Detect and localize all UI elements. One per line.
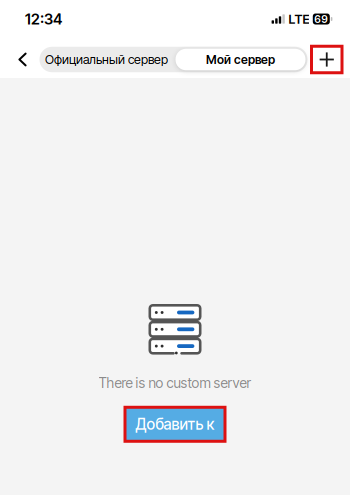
staticText: Мой сервер — [206, 52, 275, 67]
staticText: Добавить к — [135, 415, 214, 433]
button[interactable]: Официальный сервер — [39, 47, 173, 72]
staticText: 12:34 — [25, 10, 62, 28]
staticText: There is no custom server — [98, 374, 251, 391]
button[interactable]: Back — [11, 44, 33, 74]
staticText: LTE — [288, 11, 309, 27]
staticText: 69 — [314, 12, 328, 25]
button[interactable]: Мой сервер — [173, 47, 307, 72]
staticText: Официальный сервер — [45, 52, 168, 67]
button[interactable]: Add — [311, 46, 342, 73]
button[interactable]: Добавить к — [125, 407, 225, 441]
